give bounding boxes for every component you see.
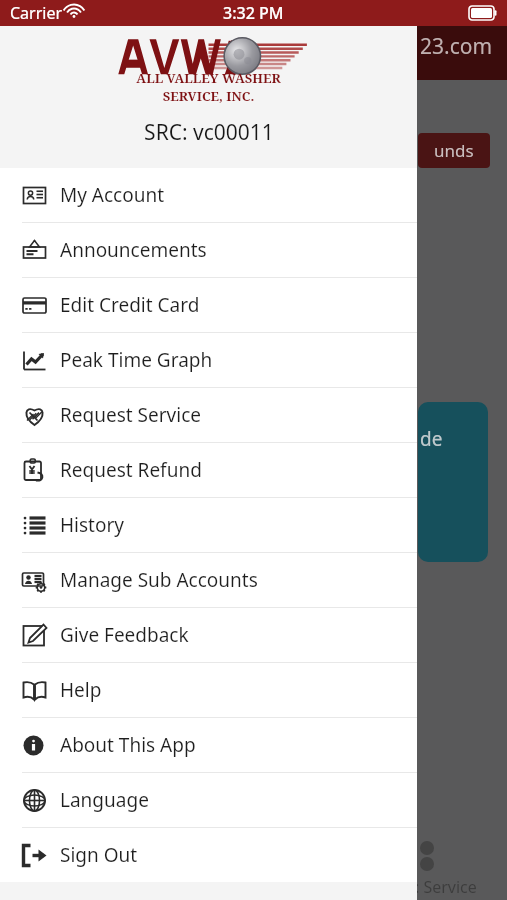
staticText: History	[60, 512, 124, 538]
staticText: Announcements	[60, 237, 207, 263]
button[interactable]: Manage Sub Accounts	[0, 553, 417, 607]
button[interactable]: Service tab	[405, 838, 507, 900]
staticText: SRC: vc00011	[144, 118, 274, 147]
button[interactable]: de	[418, 402, 488, 562]
button[interactable]: Edit Credit Card	[0, 278, 417, 332]
button[interactable]: Help	[0, 663, 417, 717]
staticText: : Service	[415, 876, 477, 898]
staticText: My Account	[60, 182, 165, 208]
staticText: Help	[60, 677, 102, 703]
staticText: unds	[434, 139, 474, 162]
button[interactable]: Sign Out	[0, 828, 417, 882]
staticText: Peak Time Graph	[60, 347, 213, 373]
staticText: 3:32 PM	[223, 2, 284, 24]
staticText: Edit Credit Card	[60, 292, 200, 318]
staticText: Request Refund	[60, 457, 202, 483]
button[interactable]: About This App	[0, 718, 417, 772]
staticText: Give Feedback	[60, 622, 189, 648]
button[interactable]: History	[0, 498, 417, 552]
button[interactable]: Request Service	[0, 388, 417, 442]
staticText: Manage Sub Accounts	[60, 567, 258, 593]
button[interactable]: Peak Time Graph	[0, 333, 417, 387]
button[interactable]: Request Refund	[0, 443, 417, 497]
staticText: About This App	[60, 732, 196, 758]
staticText: de	[420, 426, 443, 452]
staticText: Language	[60, 787, 149, 813]
staticText: 23.com	[420, 32, 493, 61]
button[interactable]: Give Feedback	[0, 608, 417, 662]
button[interactable]: My Account	[0, 168, 417, 222]
button[interactable]: Language	[0, 773, 417, 827]
staticText: ALL VALLEY WASHER SERVICE, INC.	[106, 69, 311, 105]
staticText: Carrier	[10, 2, 63, 24]
button[interactable]: Announcements	[0, 223, 417, 277]
staticText: Request Service	[60, 402, 201, 428]
button[interactable]: unds	[418, 133, 490, 168]
staticText: Sign Out	[60, 842, 138, 868]
